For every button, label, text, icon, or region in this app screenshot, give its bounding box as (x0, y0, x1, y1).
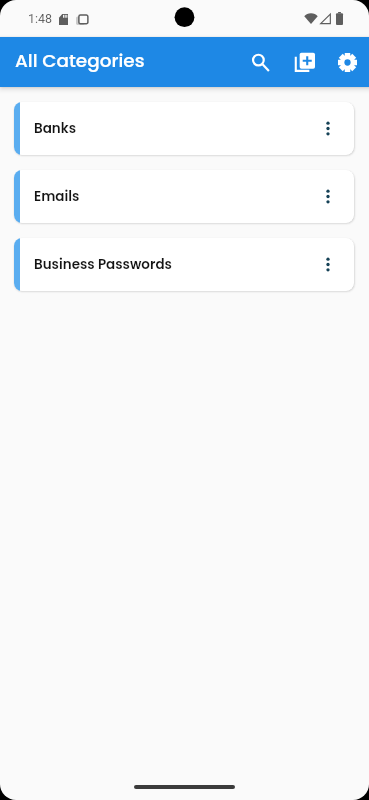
button[interactable]: Emails (14, 170, 354, 223)
button[interactable]: Add category (283, 41, 325, 83)
staticText: Business Passwords (34, 255, 308, 274)
staticText: Emails (34, 187, 308, 206)
staticText: 1:48 (28, 11, 53, 26)
button[interactable]: Banks (14, 102, 354, 155)
staticText: All Categories (15, 48, 145, 74)
button[interactable]: More options (308, 177, 348, 217)
staticText: Banks (34, 119, 308, 138)
button[interactable]: More options (308, 109, 348, 149)
button[interactable]: Search (239, 41, 281, 83)
button[interactable]: Business Passwords (14, 238, 354, 291)
button[interactable]: More options (308, 245, 348, 285)
button[interactable]: Settings (326, 41, 368, 83)
